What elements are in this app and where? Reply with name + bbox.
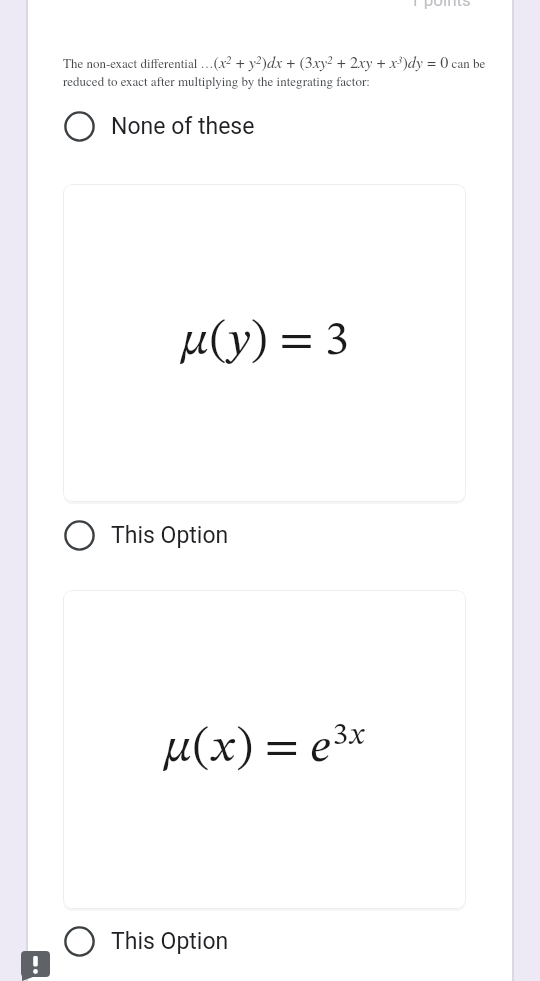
button[interactable]: 𝜇(𝑥) = 𝑒 3𝑥 — [63, 590, 466, 909]
button[interactable]: This Option — [64, 918, 512, 964]
button[interactable]: Warning — [20, 951, 51, 981]
staticText: 𝜇(𝑥) = 𝑒 3𝑥 — [164, 720, 366, 772]
button[interactable]: 𝜇(𝑦) = 3 — [63, 184, 466, 502]
staticText: The non-exact differential …(x2 + y2)dx … — [63, 51, 488, 90]
staticText: This Option — [111, 928, 229, 955]
staticText: This Option — [111, 522, 229, 549]
button[interactable]: This Option — [64, 512, 512, 558]
staticText: 1 points — [410, 0, 471, 10]
staticText: 𝜇(𝑦) = 3 — [181, 317, 349, 365]
button[interactable]: None of these — [64, 103, 512, 149]
staticText: None of these — [111, 113, 255, 140]
